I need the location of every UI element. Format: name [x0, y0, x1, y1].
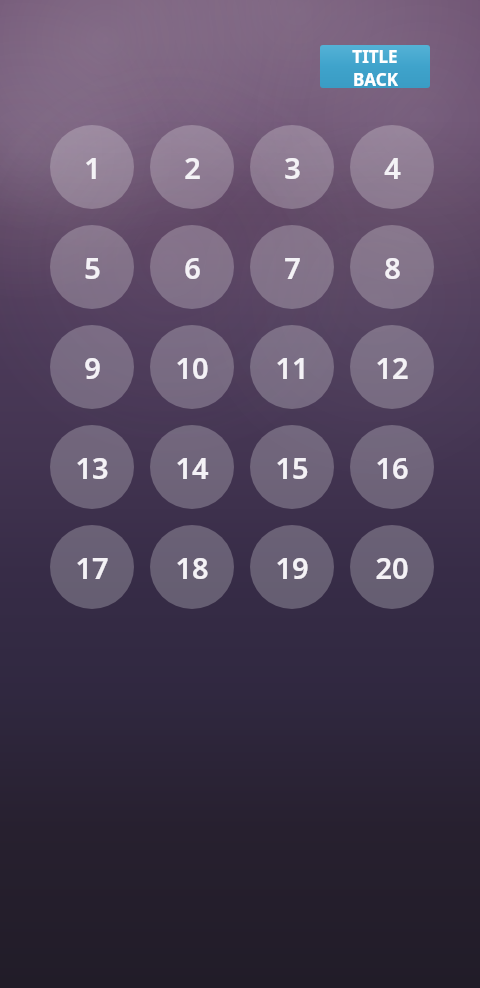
staticText: 2	[184, 148, 201, 187]
button[interactable]: TITLE	[320, 45, 430, 88]
staticText: 6	[184, 248, 201, 287]
staticText: TITLE	[352, 45, 398, 68]
button[interactable]: 14	[150, 425, 234, 509]
button[interactable]: 6	[150, 225, 234, 309]
staticText: 16	[375, 448, 409, 487]
button[interactable]: 8	[350, 225, 434, 309]
button[interactable]: 2	[150, 125, 234, 209]
button[interactable]: 4	[350, 125, 434, 209]
button[interactable]: 15	[250, 425, 334, 509]
button[interactable]: 18	[150, 525, 234, 609]
staticText: 12	[375, 348, 409, 387]
staticText: BACK	[353, 68, 398, 88]
button[interactable]: 19	[250, 525, 334, 609]
staticText: 19	[275, 548, 309, 587]
button[interactable]: 16	[350, 425, 434, 509]
staticText: 13	[75, 448, 109, 487]
staticText: 17	[75, 548, 109, 587]
button[interactable]: 20	[350, 525, 434, 609]
staticText: 4	[384, 148, 401, 187]
staticText: 11	[275, 348, 309, 387]
staticText: 5	[84, 248, 101, 287]
button[interactable]: 1	[50, 125, 134, 209]
staticText: 3	[284, 148, 301, 187]
button[interactable]: 12	[350, 325, 434, 409]
button[interactable]: 11	[250, 325, 334, 409]
button[interactable]: 9	[50, 325, 134, 409]
staticText: 8	[384, 248, 401, 287]
button[interactable]: 13	[50, 425, 134, 509]
button[interactable]: 7	[250, 225, 334, 309]
staticText: 20	[375, 548, 409, 587]
staticText: 7	[284, 248, 301, 287]
staticText: 15	[275, 448, 309, 487]
button[interactable]: 10	[150, 325, 234, 409]
staticText: 1	[84, 148, 101, 187]
staticText: 18	[175, 548, 209, 587]
button[interactable]: 17	[50, 525, 134, 609]
staticText: 9	[84, 348, 101, 387]
staticText: 10	[175, 348, 209, 387]
button[interactable]: 5	[50, 225, 134, 309]
staticText: 14	[175, 448, 209, 487]
button[interactable]: 3	[250, 125, 334, 209]
